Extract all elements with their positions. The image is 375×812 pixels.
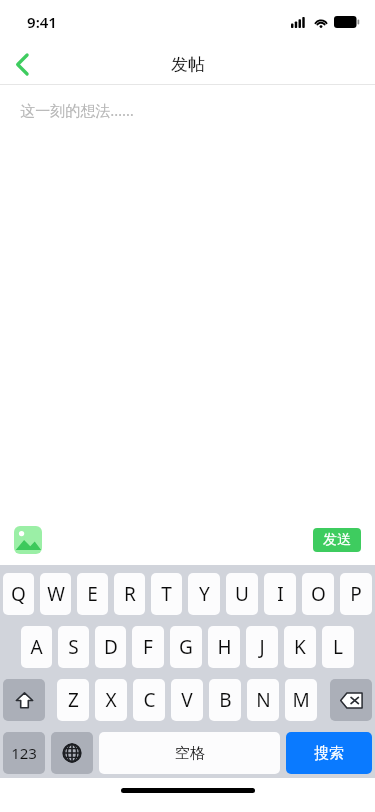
button[interactable]: Y [188, 573, 220, 615]
staticText: A [30, 634, 43, 660]
button[interactable]: N [247, 679, 279, 721]
staticText: X [105, 687, 117, 713]
staticText: S [68, 634, 79, 660]
button[interactable]: 删除 [330, 679, 372, 721]
button[interactable]: J [246, 626, 278, 668]
staticText: Q [11, 581, 26, 607]
button[interactable]: 空格 [99, 732, 280, 774]
button[interactable]: P [340, 573, 372, 615]
staticText: 这一刻的想法…… [20, 100, 134, 120]
button[interactable]: U [226, 573, 258, 615]
button[interactable]: Z [57, 679, 89, 721]
button[interactable]: E [77, 573, 108, 615]
button[interactable]: 返回 [0, 44, 44, 84]
staticText: O [311, 581, 326, 607]
button[interactable]: X [95, 679, 127, 721]
button[interactable]: F [132, 626, 164, 668]
staticText: M [292, 687, 310, 713]
staticText: K [294, 634, 306, 660]
button[interactable]: R [114, 573, 145, 615]
staticText: R [124, 581, 136, 607]
staticText: Z [68, 687, 79, 713]
staticText: J [259, 634, 265, 660]
button[interactable]: H [208, 626, 240, 668]
staticText: I [277, 581, 284, 607]
button[interactable]: 添加图片 [14, 526, 42, 554]
staticText: U [235, 581, 249, 607]
staticText: T [161, 581, 172, 607]
button[interactable]: K [284, 626, 316, 668]
button[interactable]: L [322, 626, 354, 668]
staticText: L [333, 634, 343, 660]
button[interactable]: M [285, 679, 317, 721]
button[interactable]: C [133, 679, 165, 721]
button[interactable]: T [151, 573, 182, 615]
staticText: C [143, 687, 156, 713]
staticText: V [181, 687, 193, 713]
staticText: 发送 [323, 531, 351, 549]
staticText: D [104, 634, 118, 660]
staticText: N [256, 687, 271, 713]
staticText: H [217, 634, 232, 660]
staticText: E [87, 581, 98, 607]
staticText: Y [199, 581, 210, 607]
button[interactable]: S [58, 626, 89, 668]
button[interactable]: O [302, 573, 334, 615]
staticText: 搜索 [314, 744, 344, 763]
button[interactable]: Q [3, 573, 34, 615]
button[interactable]: A [21, 626, 52, 668]
button[interactable]: 切换输入法 [51, 732, 93, 774]
button[interactable]: D [95, 626, 126, 668]
button[interactable]: 搜索 [286, 732, 372, 774]
button[interactable]: 123 [3, 732, 45, 774]
staticText: 发帖 [171, 54, 205, 75]
staticText: G [179, 634, 193, 660]
staticText: 9:41 [27, 12, 57, 32]
staticText: B [219, 687, 232, 713]
staticText: 123 [11, 743, 37, 763]
button[interactable]: B [209, 679, 241, 721]
button[interactable]: V [171, 679, 203, 721]
staticText: W [47, 581, 65, 607]
button[interactable]: 发送 [313, 528, 361, 552]
staticText: 空格 [175, 744, 205, 763]
button[interactable]: W [40, 573, 71, 615]
button[interactable]: I [264, 573, 296, 615]
staticText: P [350, 581, 362, 607]
button[interactable]: G [170, 626, 202, 668]
button[interactable]: Shift [3, 679, 45, 721]
staticText: F [143, 634, 153, 660]
